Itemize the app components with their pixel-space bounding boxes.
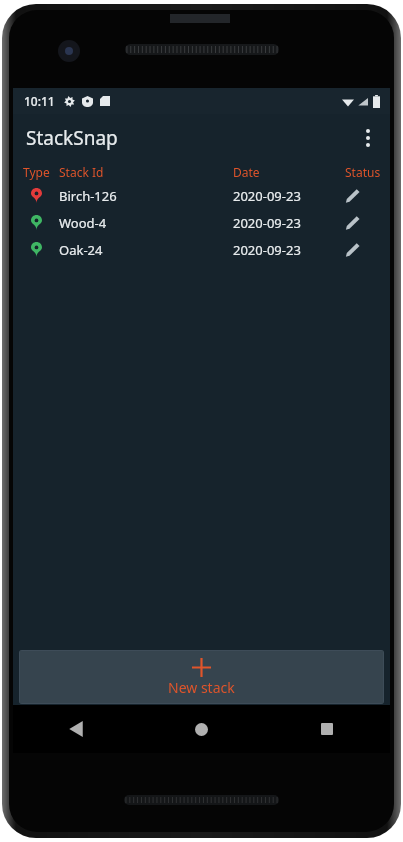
staticText: 2020-09-23: [233, 241, 301, 259]
button[interactable]: Back: [13, 705, 138, 753]
staticText: StackSnap: [26, 125, 118, 151]
staticText: Birch-126: [59, 187, 117, 205]
staticText: 2020-09-23: [233, 187, 301, 205]
button[interactable]: More options: [346, 114, 390, 162]
button[interactable]: Edit Oak-24: [345, 236, 390, 263]
staticText: 2020-09-23: [233, 214, 301, 232]
staticText: New stack: [168, 678, 235, 697]
button[interactable]: Home: [138, 705, 264, 753]
staticText: Date: [233, 164, 260, 180]
staticText: Type: [23, 164, 50, 180]
button[interactable]: Recent apps: [264, 705, 390, 753]
button[interactable]: Wood-4: [13, 209, 390, 236]
button[interactable]: Edit Wood-4: [345, 209, 390, 236]
staticText: Wood-4: [59, 214, 107, 232]
button[interactable]: Oak-24: [13, 236, 390, 263]
staticText: Status: [345, 164, 381, 180]
button[interactable]: Birch-126: [13, 182, 390, 209]
staticText: Stack Id: [59, 164, 104, 180]
staticText: 10:11: [24, 93, 55, 109]
button[interactable]: New stack: [19, 650, 384, 704]
staticText: Oak-24: [59, 241, 103, 259]
button[interactable]: Edit Birch-126: [345, 182, 390, 209]
